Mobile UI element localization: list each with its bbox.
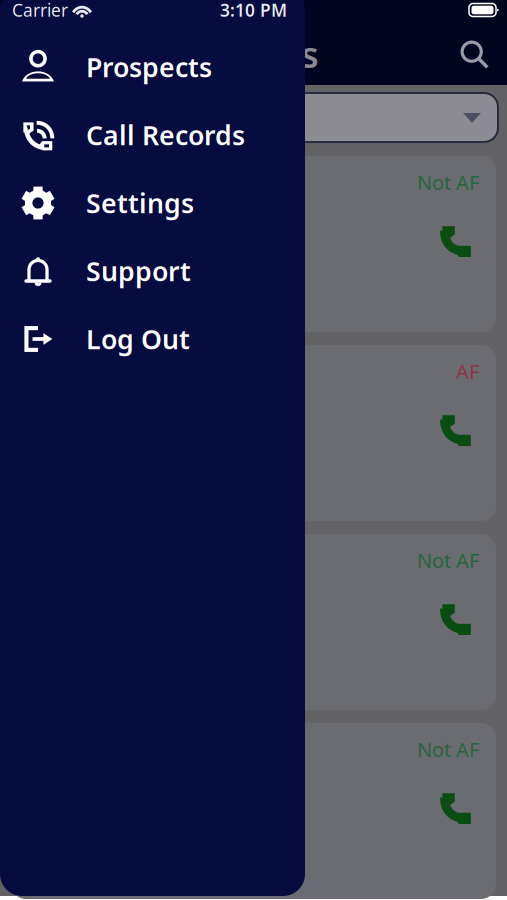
button[interactable]: Call Records xyxy=(0,101,305,169)
staticText: Prospects xyxy=(147,30,319,78)
staticText: Settings xyxy=(86,185,194,221)
button[interactable]: Support xyxy=(0,237,305,305)
button[interactable]: Search xyxy=(452,32,496,76)
button[interactable]: Settings xyxy=(0,169,305,237)
button[interactable]: Call xyxy=(434,534,496,639)
staticText: 3:10 PM xyxy=(220,0,287,21)
staticText: Carrier xyxy=(12,0,68,21)
staticText: Support xyxy=(86,253,191,289)
staticText: AF xyxy=(456,358,479,385)
staticText: Log Out xyxy=(86,321,190,357)
button[interactable]: Prospects xyxy=(0,33,305,101)
button[interactable]: Not AF xyxy=(11,156,496,332)
button[interactable] xyxy=(0,93,507,142)
staticText: Not AF xyxy=(417,169,479,196)
staticText: Not AF xyxy=(417,547,479,574)
staticText: Prospects xyxy=(86,49,212,85)
button[interactable]: Call xyxy=(434,345,496,450)
button[interactable]: Log Out xyxy=(0,305,305,373)
button[interactable]: Not AF xyxy=(11,534,496,710)
staticText: Not AF xyxy=(417,736,479,763)
staticText: Call Records xyxy=(86,117,245,153)
button[interactable]: Call xyxy=(434,156,496,261)
button[interactable]: Not AF xyxy=(11,723,496,899)
button[interactable]: Call xyxy=(434,723,496,828)
button[interactable]: AF xyxy=(11,345,496,521)
